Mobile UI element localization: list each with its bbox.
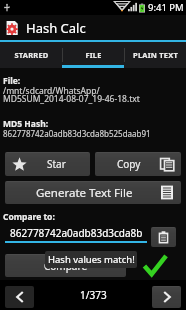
- staticText: Generate Text File: [36, 185, 133, 201]
- button[interactable]: FILE: [62, 42, 124, 68]
- button[interactable]: Star: [5, 152, 90, 176]
- staticText: PLAIN TEXT: [133, 50, 178, 60]
- staticText: 862778742a0adb83d3cda8b525daab91: [3, 128, 151, 139]
- button[interactable]: Paste: [151, 227, 176, 247]
- staticText: Compare to:: [3, 211, 55, 223]
- button[interactable]: Copy: [95, 152, 181, 176]
- staticText: 9:41 PM: [148, 1, 184, 14]
- button[interactable]: PLAIN TEXT: [124, 42, 186, 68]
- staticText: 1/373: [80, 288, 107, 302]
- staticText: Hash Calc: [26, 19, 86, 37]
- staticText: 862778742a0adb83d3cda8b: [10, 226, 143, 240]
- staticText: STARRED: [14, 50, 49, 60]
- staticText: FILE: [85, 50, 102, 60]
- staticText: Compare: [44, 259, 88, 273]
- staticText: Hash values match!: [48, 253, 135, 266]
- staticText: MD5SUM_2014-08-07_19-46-18.txt: [3, 93, 140, 105]
- button[interactable]: Generate Text File: [5, 181, 181, 204]
- button[interactable]: Compare: [5, 254, 126, 277]
- staticText: /mnt/sdcard/WhatsApp/: [3, 85, 100, 97]
- staticText: MD5 Hash:: [3, 118, 49, 130]
- button[interactable]: Next: [152, 286, 181, 308]
- staticText: File:: [3, 75, 21, 87]
- button[interactable]: STARRED: [0, 42, 62, 68]
- button[interactable]: Previous: [5, 286, 34, 308]
- staticText: Copy: [117, 157, 141, 171]
- staticText: Star: [47, 157, 66, 171]
